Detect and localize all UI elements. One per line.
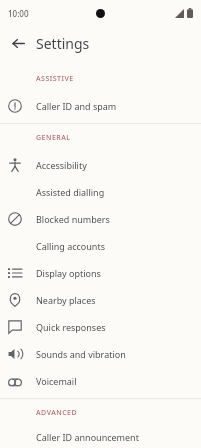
staticText: 10:00	[8, 8, 29, 19]
button[interactable]: Caller ID announcement	[0, 426, 201, 448]
staticText: Settings	[36, 34, 90, 53]
staticText: Display options	[36, 267, 101, 279]
staticText: Sounds and vibration	[36, 348, 126, 360]
staticText: Assisted dialling	[36, 186, 105, 198]
button[interactable]: Voicemail	[0, 367, 201, 394]
staticText: Caller ID announcement	[36, 431, 139, 443]
staticText: Quick responses	[36, 321, 106, 333]
button[interactable]: Back	[4, 29, 32, 57]
staticText: Calling accounts	[36, 240, 105, 252]
staticText: Blocked numbers	[36, 213, 110, 225]
button[interactable]: Accessibility	[0, 151, 201, 178]
staticText: Accessibility	[36, 159, 87, 171]
staticText: Voicemail	[36, 375, 77, 387]
staticText: ADVANCED	[36, 408, 78, 418]
staticText: Nearby places	[36, 294, 96, 306]
staticText: ASSISTIVE	[36, 74, 74, 84]
button[interactable]: Caller ID and spam	[0, 92, 201, 119]
button[interactable]: Assisted dialling	[0, 178, 201, 205]
button[interactable]: Calling accounts	[0, 232, 201, 259]
button[interactable]: Nearby places	[0, 286, 201, 313]
button[interactable]: Quick responses	[0, 313, 201, 340]
button[interactable]: Display options	[0, 259, 201, 286]
staticText: Caller ID and spam	[36, 100, 117, 112]
button[interactable]: Blocked numbers	[0, 205, 201, 232]
staticText: GENERAL	[36, 133, 71, 143]
button[interactable]: Sounds and vibration	[0, 340, 201, 367]
